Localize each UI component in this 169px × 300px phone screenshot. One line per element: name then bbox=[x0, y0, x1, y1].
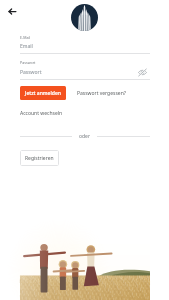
staticText: Email bbox=[20, 43, 33, 50]
button[interactable]: Back bbox=[4, 3, 21, 20]
staticText: E-Mail bbox=[20, 35, 31, 40]
staticText: Registrieren bbox=[25, 155, 54, 162]
staticText: Passwort bbox=[20, 69, 141, 76]
staticText: Passwort bbox=[20, 60, 36, 65]
button[interactable]: Passwort vergessen? bbox=[74, 87, 129, 100]
staticText: Account wechseln bbox=[20, 110, 63, 117]
button[interactable]: Show password bbox=[138, 68, 147, 77]
staticText: Jetzt anmelden bbox=[25, 90, 61, 97]
staticText: Passwort vergessen? bbox=[77, 90, 126, 97]
button[interactable]: Registrieren bbox=[20, 150, 59, 166]
button[interactable]: Account wechseln bbox=[20, 108, 63, 119]
button[interactable]: Jetzt anmelden bbox=[20, 86, 66, 100]
staticText: oder bbox=[79, 133, 90, 140]
